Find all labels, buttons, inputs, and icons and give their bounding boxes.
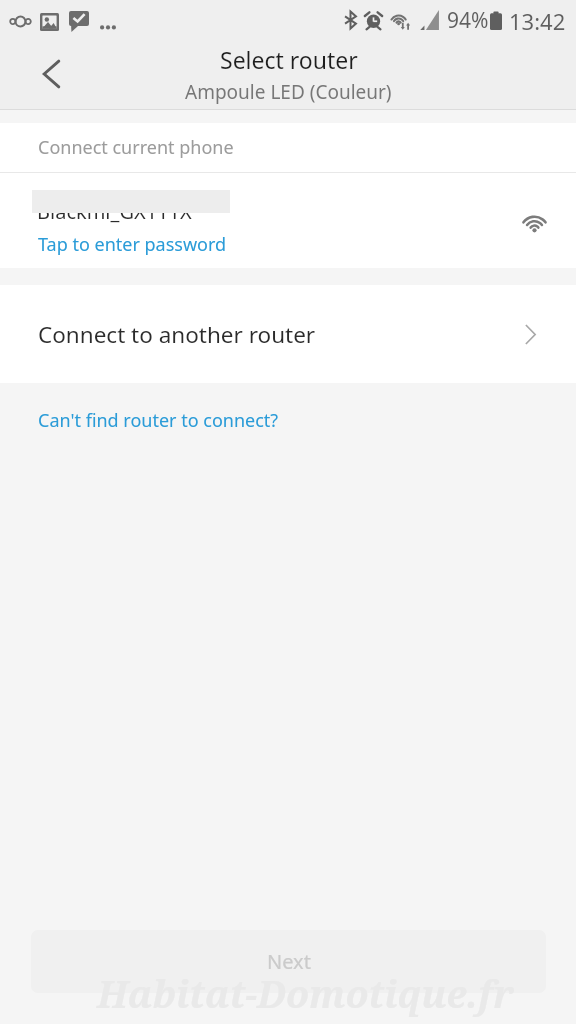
- staticText: Blackmi_GX111X: [37, 198, 192, 225]
- button[interactable]: Can't find router to connect?: [38, 408, 279, 433]
- button[interactable]: Back: [22, 45, 80, 103]
- staticText: Select router: [220, 44, 358, 75]
- staticText: Ampoule LED (Couleur): [185, 79, 392, 105]
- staticText: Connect to another router: [38, 319, 316, 350]
- staticText: Habitat-Domotique.fr: [97, 968, 514, 1019]
- staticText: Tap to enter password: [38, 232, 227, 257]
- button[interactable]: Blackmi_GX111X: [0, 173, 576, 268]
- staticText: 94%: [447, 6, 489, 35]
- button[interactable]: Next: [31, 930, 546, 993]
- staticText: Connect current phone: [38, 135, 234, 160]
- button[interactable]: Connect to another router: [0, 285, 576, 383]
- staticText: 13:42: [509, 6, 566, 36]
- staticText: Next: [267, 948, 311, 975]
- staticText: Can't find router to connect?: [38, 408, 279, 433]
